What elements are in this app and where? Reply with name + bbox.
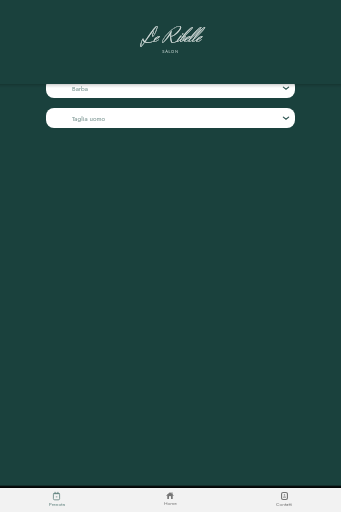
button[interactable]: Contatti — [227, 488, 341, 512]
button[interactable]: Prenota — [0, 488, 113, 512]
staticText: Barba — [72, 84, 88, 93]
staticText: Prenota — [49, 501, 65, 508]
staticText: Taglia uomo — [72, 114, 106, 123]
staticText: Contatti — [276, 501, 293, 508]
staticText: SALON — [162, 49, 179, 55]
button[interactable]: Barba — [46, 78, 295, 98]
button[interactable]: Taglia uomo — [46, 108, 295, 128]
staticText: Home — [164, 500, 177, 507]
button[interactable]: Home — [113, 488, 227, 512]
staticText: Le Ribelle — [141, 23, 201, 52]
